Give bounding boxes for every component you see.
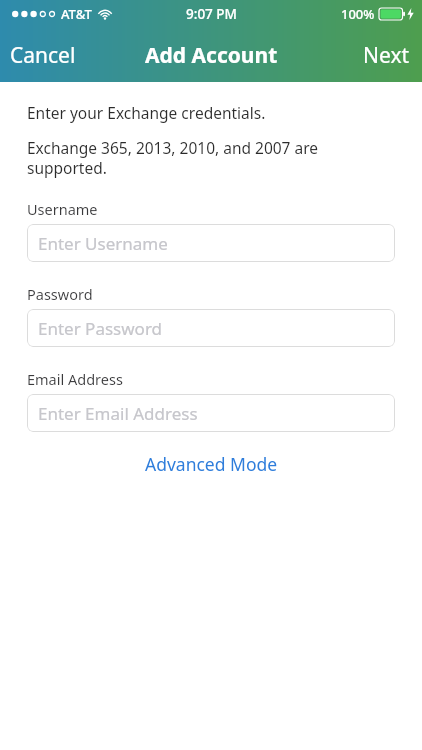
staticText: 100% [341, 5, 375, 23]
staticText: Exchange 365, 2013, 2010, and 2007 are s… [27, 137, 395, 179]
button[interactable]: Advanced Mode [131, 446, 292, 482]
staticText: 9:07 PM [186, 5, 237, 23]
staticText: Advanced Mode [145, 452, 278, 476]
button[interactable]: Next [351, 28, 422, 82]
button[interactable]: Cancel [0, 28, 86, 82]
staticText: Enter Email Address [38, 402, 198, 425]
button[interactable]: Enter Email Address [27, 394, 395, 432]
staticText: Enter your Exchange credentials. [27, 102, 266, 123]
staticText: Enter Password [38, 317, 163, 340]
staticText: AT&T [61, 5, 92, 23]
button[interactable]: Enter Username [27, 224, 395, 262]
button[interactable]: Enter Password [27, 309, 395, 347]
staticText: Username [27, 199, 98, 219]
staticText: Add Account [145, 41, 278, 70]
staticText: Cancel [10, 41, 76, 70]
staticText: Password [27, 284, 93, 304]
staticText: Enter Username [38, 232, 168, 255]
staticText: Email Address [27, 369, 123, 389]
staticText: Next [363, 41, 410, 70]
